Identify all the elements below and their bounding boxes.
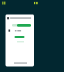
button[interactable]: Action [14, 36, 25, 38]
button[interactable]: Continue [17, 24, 31, 27]
